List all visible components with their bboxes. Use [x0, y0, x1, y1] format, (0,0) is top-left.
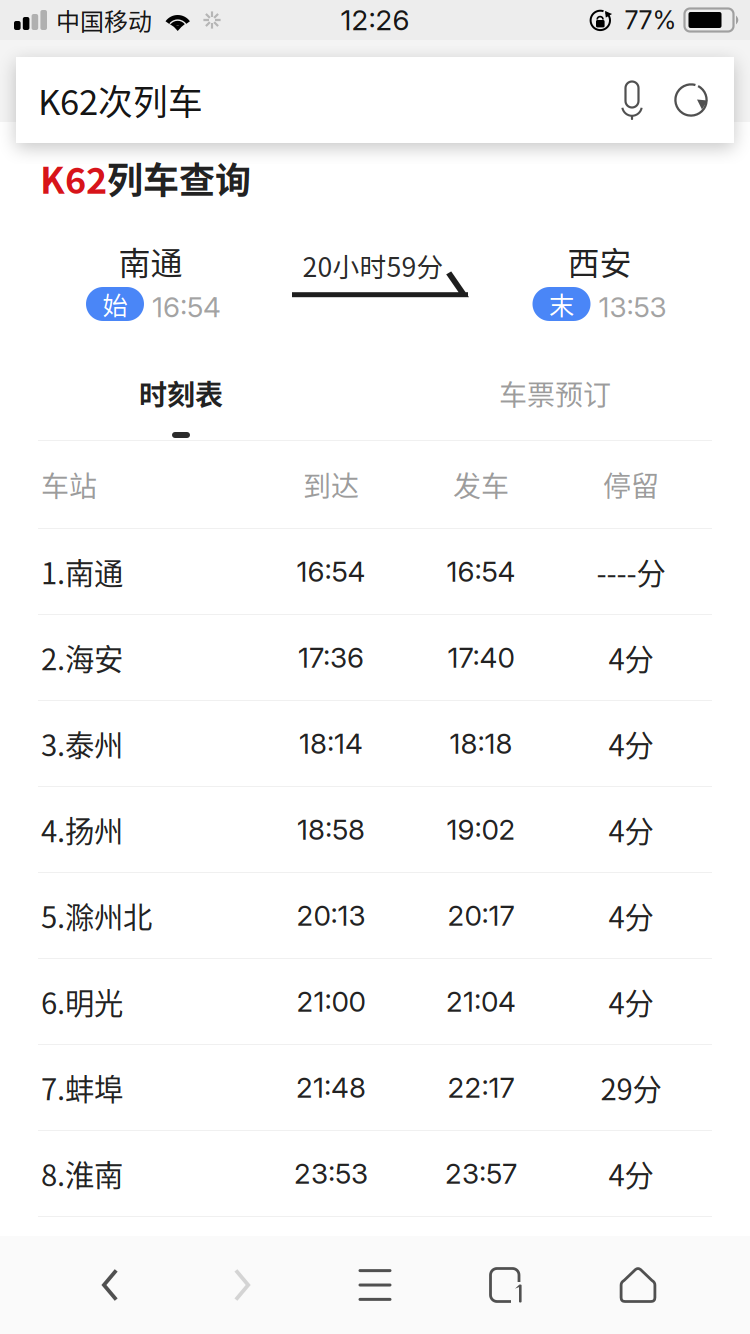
staticText: 21:04 [446, 985, 516, 1018]
staticText: 车站 [41, 464, 97, 505]
button[interactable]: Refresh [660, 57, 722, 143]
staticText: 4分 [608, 808, 653, 851]
staticText: 7.蚌埠 [41, 1066, 123, 1109]
staticText: 16:54 [446, 555, 515, 588]
button[interactable]: Menu [309, 1236, 441, 1334]
staticText: 77% [624, 5, 676, 35]
staticText: 6.明光 [41, 980, 123, 1023]
button[interactable]: Tabs [439, 1236, 571, 1334]
staticText: 19:02 [446, 813, 515, 846]
staticText: 23:57 [445, 1157, 517, 1190]
button[interactable]: 车票预订 [374, 373, 736, 435]
staticText: 2.海安 [41, 636, 123, 679]
button[interactable]: Forward [176, 1236, 308, 1334]
staticText: 20小时59分 [302, 246, 443, 285]
staticText: 4分 [608, 636, 653, 679]
button[interactable]: 时刻表 [0, 373, 362, 435]
staticText: 3.泰州 [41, 722, 123, 765]
staticText: 20:13 [296, 899, 365, 932]
button[interactable]: Home [572, 1236, 704, 1334]
staticText: 18:58 [297, 813, 365, 846]
staticText: 4分 [608, 1152, 653, 1195]
staticText: 到达 [303, 464, 359, 505]
staticText: 29分 [600, 1066, 661, 1109]
staticText: 4.扬州 [41, 808, 123, 851]
staticText: 5.滁州北 [41, 894, 152, 937]
staticText: 8.淮南 [41, 1152, 123, 1195]
staticText: 车票预订 [499, 373, 611, 413]
button[interactable]: Back [44, 1236, 176, 1334]
staticText: 列车查询 [107, 152, 251, 204]
staticText: 发车 [453, 464, 509, 505]
staticText: 南通 [118, 238, 182, 284]
staticText: 21:48 [296, 1071, 366, 1104]
staticText: ----分 [596, 550, 665, 593]
staticText: 末 [549, 286, 574, 322]
staticText: 17:36 [298, 641, 364, 674]
staticText: 20:17 [447, 899, 514, 932]
staticText: 4分 [608, 894, 653, 937]
staticText: 13:53 [598, 290, 666, 324]
staticText: 始 [102, 286, 127, 322]
staticText: 18:14 [299, 727, 363, 760]
staticText: 12:26 [340, 3, 409, 37]
staticText: 21:00 [296, 985, 365, 1018]
staticText: 1.南通 [41, 550, 123, 593]
staticText: K62 [40, 152, 107, 204]
staticText: 时刻表 [139, 373, 223, 413]
staticText: 4分 [608, 980, 653, 1023]
staticText: 17:40 [447, 641, 514, 674]
button[interactable]: Voice search [604, 57, 660, 143]
staticText: 16:54 [296, 555, 365, 588]
staticText: 西安 [567, 238, 631, 284]
staticText: 4分 [608, 722, 653, 765]
staticText: K62次列车 [38, 75, 203, 125]
staticText: 停留 [603, 464, 659, 505]
staticText: 23:53 [294, 1157, 368, 1190]
staticText: 18:18 [449, 727, 512, 760]
staticText: 中国移动 [56, 3, 152, 37]
staticText: 22:17 [447, 1071, 514, 1104]
staticText: 16:54 [152, 290, 221, 324]
